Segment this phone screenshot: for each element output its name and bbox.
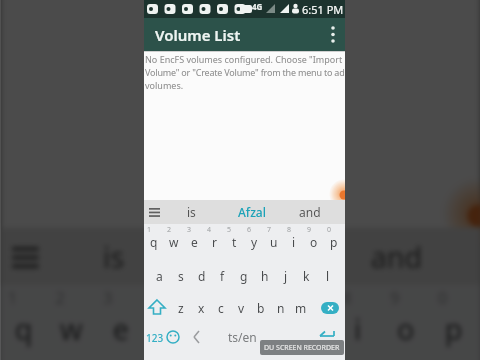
button[interactable] xyxy=(323,18,345,51)
button[interactable]: t xyxy=(224,230,244,254)
button[interactable] xyxy=(164,328,182,346)
staticText: n xyxy=(277,300,285,316)
button[interactable]: q xyxy=(144,230,164,254)
staticText: 0 xyxy=(327,225,332,235)
button[interactable]: 123 xyxy=(146,331,164,345)
button[interactable]: ts/en xyxy=(212,324,272,350)
button[interactable]: Afzal xyxy=(224,200,279,224)
staticText: 4 xyxy=(151,287,163,311)
button[interactable]: d xyxy=(191,264,212,288)
staticText: Afzal xyxy=(225,237,292,276)
button[interactable]: and xyxy=(330,228,462,285)
staticText: x xyxy=(198,300,205,316)
button[interactable]: w xyxy=(48,299,96,357)
staticText: 3 xyxy=(187,225,192,235)
button[interactable]: x xyxy=(191,296,211,320)
staticText: u xyxy=(301,309,320,347)
staticText: a xyxy=(156,268,163,284)
button[interactable]: k xyxy=(296,264,317,288)
staticText: e xyxy=(191,234,198,250)
staticText: 7 xyxy=(294,287,306,311)
staticText: 9 xyxy=(307,225,312,235)
button[interactable] xyxy=(445,178,480,249)
button[interactable]: r xyxy=(144,299,191,357)
staticText: j xyxy=(284,268,288,284)
button[interactable]: is xyxy=(53,228,172,285)
staticText: 5 xyxy=(199,287,211,311)
button[interactable] xyxy=(146,296,168,320)
staticText: z xyxy=(178,300,184,316)
staticText: w xyxy=(60,309,84,347)
staticText: t xyxy=(232,234,237,250)
staticText: i xyxy=(354,309,364,347)
button[interactable]: a xyxy=(149,264,170,288)
staticText: 1 xyxy=(147,225,152,235)
button[interactable]: s xyxy=(170,264,191,288)
button[interactable]: Afzal xyxy=(191,228,323,285)
staticText: r xyxy=(163,309,175,347)
button[interactable]: q xyxy=(0,299,48,357)
button[interactable]: j xyxy=(275,264,296,288)
button[interactable]: m xyxy=(291,296,311,320)
button[interactable]: p xyxy=(430,299,478,357)
staticText: volumes. xyxy=(145,79,184,91)
button[interactable]: f xyxy=(212,264,233,288)
staticText: q xyxy=(15,309,34,347)
staticText: 6 xyxy=(247,225,252,235)
button[interactable]: u xyxy=(264,230,284,254)
button[interactable]: is xyxy=(166,200,216,224)
button[interactable]: g xyxy=(233,264,254,288)
staticText: e xyxy=(113,309,129,347)
button[interactable]: o xyxy=(304,230,324,254)
staticText: 2 xyxy=(167,225,172,235)
button[interactable] xyxy=(330,179,345,209)
staticText: and xyxy=(371,237,423,276)
button[interactable]: t xyxy=(191,299,239,357)
staticText: 4 xyxy=(207,225,212,235)
staticText: l xyxy=(326,268,330,284)
button[interactable]: z xyxy=(171,296,191,320)
button[interactable]: y xyxy=(239,299,287,357)
staticText: w xyxy=(169,234,179,250)
staticText: q xyxy=(150,234,158,250)
staticText: f xyxy=(220,268,225,284)
staticText: y xyxy=(256,309,273,347)
button[interactable]: w xyxy=(164,230,184,254)
button[interactable]: n xyxy=(271,296,291,320)
button[interactable]: i xyxy=(284,230,304,254)
staticText: r xyxy=(212,234,217,250)
button[interactable]: r xyxy=(204,230,224,254)
staticText: and xyxy=(299,204,321,220)
button[interactable]: i xyxy=(335,299,383,357)
button[interactable]: v xyxy=(231,296,251,320)
button[interactable]: c xyxy=(211,296,231,320)
button[interactable]: l xyxy=(317,264,338,288)
button[interactable]: and xyxy=(282,200,337,224)
staticText: u xyxy=(270,234,278,250)
staticText: ts/en xyxy=(228,329,257,345)
button[interactable] xyxy=(144,200,166,224)
staticText: 6:51 PM xyxy=(302,2,344,17)
button[interactable]: y xyxy=(244,230,264,254)
button[interactable] xyxy=(0,228,53,285)
button[interactable] xyxy=(190,328,204,346)
staticText: p xyxy=(330,234,338,250)
button[interactable]: h xyxy=(254,264,275,288)
staticText: b xyxy=(257,300,265,316)
button[interactable]: b xyxy=(251,296,271,320)
button[interactable]: p xyxy=(324,230,344,254)
staticText: i xyxy=(292,234,296,250)
button[interactable]: o xyxy=(383,299,430,357)
button[interactable]: u xyxy=(287,299,335,357)
button[interactable] xyxy=(319,296,343,320)
button[interactable]: e xyxy=(96,299,144,357)
staticText: m xyxy=(295,300,307,316)
staticText: Afzal xyxy=(238,204,266,220)
staticText: t xyxy=(211,309,222,347)
button[interactable]: e xyxy=(184,230,204,254)
